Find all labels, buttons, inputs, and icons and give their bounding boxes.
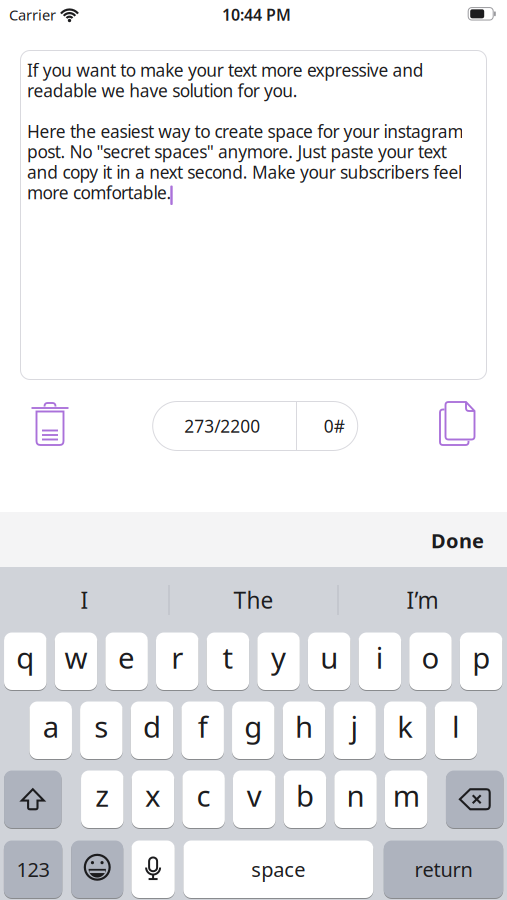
button[interactable]: a: [29, 701, 72, 759]
staticText: e: [118, 638, 135, 677]
button[interactable]: r: [156, 632, 198, 690]
staticText: u: [320, 638, 338, 677]
staticText: r: [171, 638, 183, 677]
staticText: i: [376, 638, 384, 677]
button[interactable]: g: [232, 701, 274, 759]
staticText: post. No "secret spaces" anymore. Just p…: [27, 140, 447, 163]
button[interactable]: m: [385, 770, 427, 828]
button[interactable]: u: [308, 632, 350, 690]
button[interactable]: Dictate: [131, 840, 175, 898]
staticText: and copy it in a next second. Make your …: [27, 160, 462, 183]
staticText: l: [452, 707, 460, 746]
staticText: Carrier: [9, 5, 56, 24]
button[interactable]: z: [81, 770, 123, 828]
staticText: b: [296, 776, 314, 815]
staticText: return: [414, 856, 472, 883]
button[interactable]: c: [182, 770, 225, 828]
staticText: h: [295, 707, 313, 746]
staticText: space: [251, 856, 305, 883]
button[interactable]: w: [55, 632, 97, 690]
staticText: more comfortable.: [27, 181, 172, 204]
button[interactable]: v: [233, 770, 275, 828]
staticText: z: [95, 776, 109, 815]
staticText: q: [16, 638, 34, 677]
staticText: Here the easiest way to create space for…: [27, 120, 463, 143]
staticText: o: [421, 638, 439, 677]
staticText: v: [247, 776, 262, 815]
staticText: 273/2200: [184, 414, 260, 437]
button[interactable]: I: [0, 572, 168, 628]
button[interactable]: The: [169, 572, 337, 628]
staticText: k: [397, 707, 413, 746]
staticText: readable we have solution for you.: [27, 79, 298, 102]
button[interactable]: Copy text: [440, 402, 475, 445]
button[interactable]: j: [333, 701, 376, 759]
staticText: 0#: [324, 414, 345, 437]
staticText: n: [347, 776, 365, 815]
staticText: y: [271, 638, 286, 677]
button[interactable]: s: [80, 701, 123, 759]
button[interactable]: I’m: [338, 572, 506, 628]
button[interactable]: f: [181, 701, 224, 759]
staticText: x: [145, 776, 161, 815]
button[interactable]: l: [435, 701, 477, 759]
button[interactable]: p: [460, 632, 502, 690]
button[interactable]: d: [131, 701, 173, 759]
button[interactable]: x: [132, 770, 174, 828]
button[interactable]: 273/2200: [152, 401, 358, 451]
button[interactable]: q: [4, 632, 46, 690]
button[interactable]: h: [283, 701, 325, 759]
button[interactable]: y: [257, 632, 300, 690]
button[interactable]: i: [359, 632, 401, 690]
staticText: I’m: [406, 585, 438, 615]
staticText: Done: [431, 527, 484, 554]
button[interactable]: space: [183, 840, 373, 898]
button[interactable]: Delete: [446, 770, 503, 828]
staticText: The: [233, 585, 273, 615]
staticText: d: [143, 707, 161, 746]
staticText: s: [94, 707, 108, 746]
button[interactable]: Shift: [4, 770, 61, 828]
staticText: f: [198, 707, 208, 746]
staticText: c: [197, 776, 211, 815]
button[interactable]: Emoji: [71, 840, 123, 898]
staticText: p: [472, 638, 490, 677]
staticText: a: [43, 707, 59, 746]
staticText: 123: [17, 856, 50, 883]
staticText: j: [351, 707, 359, 746]
staticText: m: [393, 776, 420, 815]
staticText: t: [222, 638, 233, 677]
button[interactable]: return: [384, 840, 503, 898]
staticText: I: [80, 585, 88, 615]
button[interactable]: Done: [431, 527, 484, 554]
button[interactable]: e: [105, 632, 148, 690]
button[interactable]: b: [284, 770, 326, 828]
button[interactable]: o: [409, 632, 452, 690]
staticText: w: [64, 638, 87, 677]
button[interactable]: n: [334, 770, 377, 828]
staticText: 10:44 PM: [222, 4, 291, 25]
button[interactable]: t: [207, 632, 249, 690]
staticText: g: [244, 707, 262, 746]
button[interactable]: Delete text: [31, 402, 68, 446]
staticText: If you want to make your text more expre…: [27, 58, 424, 81]
button[interactable]: 123: [4, 840, 62, 898]
button[interactable]: k: [384, 701, 426, 759]
